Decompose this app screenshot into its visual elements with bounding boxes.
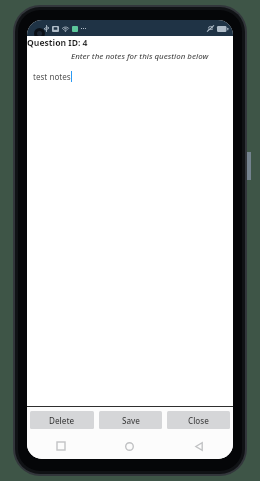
staticText: Save bbox=[122, 415, 140, 426]
staticText: Delete bbox=[49, 415, 75, 426]
button[interactable]: Close bbox=[167, 411, 230, 429]
staticText: test notes bbox=[33, 71, 71, 82]
button[interactable]: Home bbox=[95, 433, 164, 459]
button[interactable]: Save bbox=[99, 411, 162, 429]
button[interactable]: Delete bbox=[30, 411, 94, 429]
button[interactable]: test notes bbox=[33, 71, 233, 82]
staticText: Close bbox=[188, 415, 209, 426]
staticText: Enter the notes for this question below bbox=[71, 51, 209, 62]
button[interactable]: Back bbox=[164, 433, 233, 459]
button[interactable]: Recent apps bbox=[27, 433, 95, 459]
staticText: Question ID: 4 bbox=[27, 37, 88, 49]
